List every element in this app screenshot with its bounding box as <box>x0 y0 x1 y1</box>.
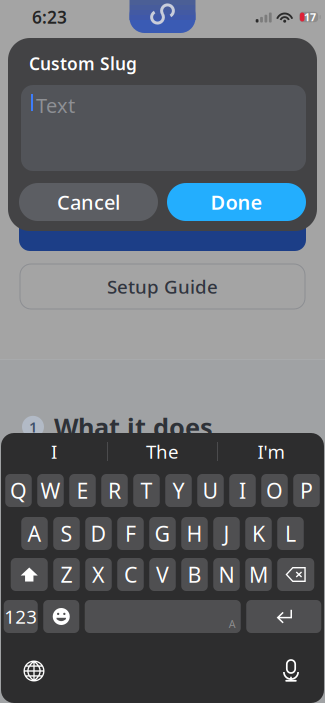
staticText: I <box>51 439 57 464</box>
button[interactable]: S <box>53 517 80 550</box>
button[interactable]: A <box>21 517 48 550</box>
staticText: M <box>249 560 268 589</box>
staticText: What it does <box>54 410 213 444</box>
staticText: J <box>223 519 229 548</box>
button[interactable]: Dictate <box>271 654 311 688</box>
button[interactable]: R <box>101 474 128 507</box>
staticText: O <box>266 476 283 505</box>
staticText: Y <box>172 476 184 505</box>
staticText: I <box>239 476 246 505</box>
button[interactable]: J <box>213 517 240 550</box>
staticText: U <box>202 476 218 505</box>
button[interactable]: Emoji <box>43 600 79 633</box>
staticText: 6:23 <box>32 5 67 28</box>
button[interactable]: Y <box>165 474 192 507</box>
staticText: D <box>90 519 106 548</box>
button[interactable]: U <box>197 474 224 507</box>
button[interactable]: W <box>37 474 64 507</box>
button[interactable]: X <box>85 558 112 591</box>
staticText: W <box>40 476 60 505</box>
staticText: F <box>125 519 136 548</box>
staticText: X <box>92 560 105 589</box>
staticText: V <box>156 560 169 589</box>
staticText: B <box>187 560 201 589</box>
button[interactable]: Q <box>5 474 32 507</box>
staticText: R <box>108 476 121 505</box>
staticText: A <box>27 519 41 548</box>
button[interactable]: B <box>181 558 208 591</box>
button[interactable]: I'm <box>218 433 324 470</box>
staticText: Custom Slug <box>29 52 137 75</box>
staticText: Q <box>10 476 27 505</box>
staticText: Setup Guide <box>107 274 218 299</box>
staticText: I'm <box>257 439 284 464</box>
button[interactable]: M <box>245 558 272 591</box>
button[interactable]: E <box>69 474 96 507</box>
staticText: H <box>186 519 202 548</box>
staticText: Done <box>210 189 262 215</box>
button[interactable]: D <box>85 517 112 550</box>
staticText: 123 <box>4 604 37 629</box>
button[interactable]: Cancel <box>19 183 158 221</box>
button[interactable]: P <box>293 474 320 507</box>
button[interactable]: G <box>149 517 176 550</box>
button[interactable]: Delete <box>277 558 314 591</box>
button[interactable]: I <box>229 474 256 507</box>
staticText: S <box>60 519 72 548</box>
button[interactable]: Return <box>246 600 321 633</box>
staticText: The <box>146 439 179 464</box>
button[interactable]: K <box>245 517 272 550</box>
staticText: 17 <box>304 10 316 24</box>
staticText: P <box>300 476 313 505</box>
button[interactable]: C <box>117 558 144 591</box>
button[interactable]: Done <box>167 183 306 221</box>
button[interactable]: Live activity <box>129 0 195 33</box>
button[interactable]: 123 <box>4 600 38 633</box>
button[interactable]: A <box>85 600 241 633</box>
staticText: Z <box>60 560 72 589</box>
staticText: G <box>154 519 170 548</box>
staticText: E <box>76 476 88 505</box>
staticText: Cancel <box>57 189 120 215</box>
button[interactable]: Z <box>53 558 80 591</box>
button[interactable]: H <box>181 517 208 550</box>
button[interactable]: Next keyboard <box>14 654 54 688</box>
staticText: L <box>285 519 296 548</box>
staticText: N <box>218 560 234 589</box>
button[interactable]: T <box>133 474 160 507</box>
button[interactable]: V <box>149 558 176 591</box>
button[interactable]: The <box>108 433 217 470</box>
button[interactable]: O <box>261 474 288 507</box>
button[interactable]: N <box>213 558 240 591</box>
button[interactable]: I <box>1 433 107 470</box>
button[interactable]: Shift <box>11 558 48 591</box>
button[interactable]: L <box>277 517 304 550</box>
staticText: C <box>124 560 137 589</box>
staticText: K <box>252 519 265 548</box>
staticText: Text <box>36 92 75 119</box>
staticText: T <box>140 476 152 505</box>
button[interactable]: F <box>117 517 144 550</box>
staticText: 1 <box>29 417 37 437</box>
staticText: A <box>229 617 236 631</box>
button[interactable]: Setup Guide <box>20 264 305 309</box>
